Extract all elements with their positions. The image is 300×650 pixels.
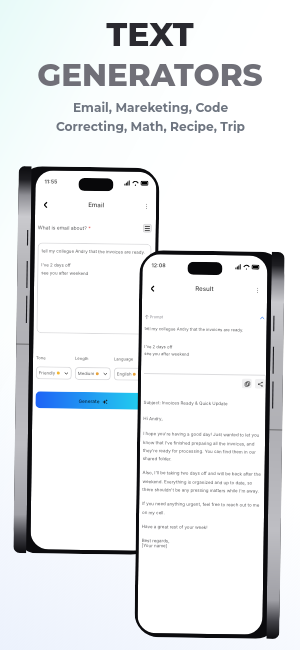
staticText: Have a great rest of your week! — [142, 524, 208, 530]
staticText: TEXT — [106, 14, 194, 54]
staticText: I've 2 days off — [41, 262, 71, 268]
button[interactable]: Templates — [143, 224, 152, 233]
staticText: What is email about? — [38, 224, 87, 231]
staticText: Medium — [78, 371, 95, 376]
button[interactable]: Generate — [35, 391, 149, 410]
staticText: tell my collegue Andry that the invoices… — [145, 326, 244, 332]
staticText: Language — [114, 356, 134, 362]
staticText: * — [87, 225, 91, 231]
button[interactable]: Back — [145, 281, 159, 295]
staticText: [Your name] — [141, 543, 168, 548]
staticText: I hope you're having a good day! Just wa… — [143, 431, 264, 463]
button[interactable]: Back — [38, 197, 52, 211]
staticText: Result — [195, 285, 214, 293]
staticText: 12:08 — [151, 262, 167, 268]
staticText: Hi Andry, — [143, 416, 163, 421]
staticText: Length — [75, 356, 89, 361]
staticText: Also, I'll be taking two days off and wi… — [142, 470, 264, 494]
staticText: Generate — [78, 398, 100, 404]
staticText: tell my collegue Andry that the invoices… — [41, 248, 146, 255]
button[interactable]: More options — [140, 200, 152, 212]
button[interactable]: Collapse prompt — [259, 315, 266, 322]
staticText: see you after weekend — [144, 351, 189, 357]
staticText: Email — [88, 201, 104, 209]
staticText: Subject: Invoices Ready & Quick Update — [143, 400, 228, 406]
button[interactable]: Medium — [75, 367, 111, 380]
staticText: Best regards, — [142, 538, 170, 543]
staticText: Tone — [36, 355, 46, 360]
staticText: GENERATORS — [37, 56, 263, 94]
staticText: Prompt — [150, 314, 164, 319]
button[interactable]: Friendly — [36, 366, 72, 380]
staticText: see you after weekend — [41, 270, 89, 276]
staticText: Email, Mareketing, Code Correcting, Math… — [56, 100, 245, 134]
button[interactable]: More options — [251, 284, 263, 296]
staticText: English — [117, 371, 132, 377]
staticText: I've 2 days off — [144, 344, 173, 349]
button[interactable]: Share — [255, 379, 265, 389]
staticText: 11:55 — [44, 178, 58, 185]
staticText: If you need anything urgent, feel free t… — [142, 501, 263, 517]
button[interactable]: English — [114, 367, 150, 381]
button[interactable]: Copy — [242, 378, 252, 388]
staticText: Friendly — [39, 370, 56, 375]
